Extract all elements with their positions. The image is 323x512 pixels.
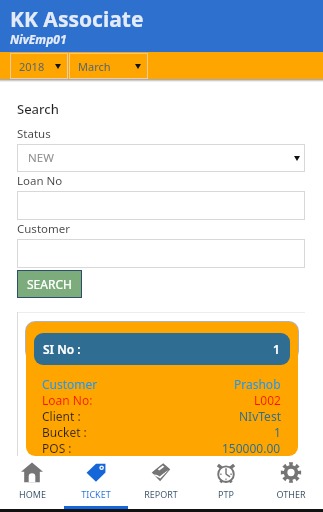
button[interactable] [17, 191, 305, 220]
button[interactable]: SEARCH [17, 270, 82, 298]
staticText: Bucket : [42, 424, 87, 440]
button[interactable]: Home [0, 456, 64, 512]
staticText: NEW [28, 150, 54, 166]
button[interactable]: Report [128, 456, 193, 512]
button[interactable]: Other [258, 456, 323, 512]
button[interactable]: SI No : [26, 322, 298, 456]
staticText: Client : [42, 408, 81, 424]
staticText: NivEmp01 [10, 31, 67, 47]
staticText: NIvTest [239, 408, 281, 424]
staticText: March [78, 59, 111, 74]
button[interactable]: Ticket [64, 456, 128, 512]
button[interactable]: March [69, 53, 148, 79]
staticText: Customer [17, 221, 70, 237]
staticText: L002 [254, 392, 281, 408]
staticText: Loan No [17, 173, 63, 189]
staticText: 1 [274, 424, 281, 440]
staticText: Search [17, 100, 59, 118]
staticText: HOME [19, 488, 46, 500]
button[interactable] [17, 239, 305, 268]
staticText: KK Associate [10, 5, 144, 34]
staticText: OTHER [276, 488, 306, 500]
button[interactable]: PTP [193, 456, 258, 512]
staticText: Loan No: [42, 392, 93, 408]
staticText: 150000.00 [222, 440, 281, 456]
staticText: 2018 [19, 59, 45, 74]
staticText: SEARCH [27, 276, 72, 292]
staticText: Status [17, 126, 51, 142]
staticText: SI No : [43, 341, 81, 357]
staticText: PTP [218, 488, 234, 500]
staticText: REPORT [144, 488, 178, 500]
staticText: POS : [42, 440, 72, 456]
staticText: Customer [42, 376, 98, 392]
button[interactable]: NEW [17, 144, 305, 172]
staticText: 1 [273, 341, 280, 357]
staticText: Prashob [234, 376, 281, 392]
button[interactable]: 2018 [10, 53, 68, 79]
staticText: TICKET [81, 488, 111, 500]
